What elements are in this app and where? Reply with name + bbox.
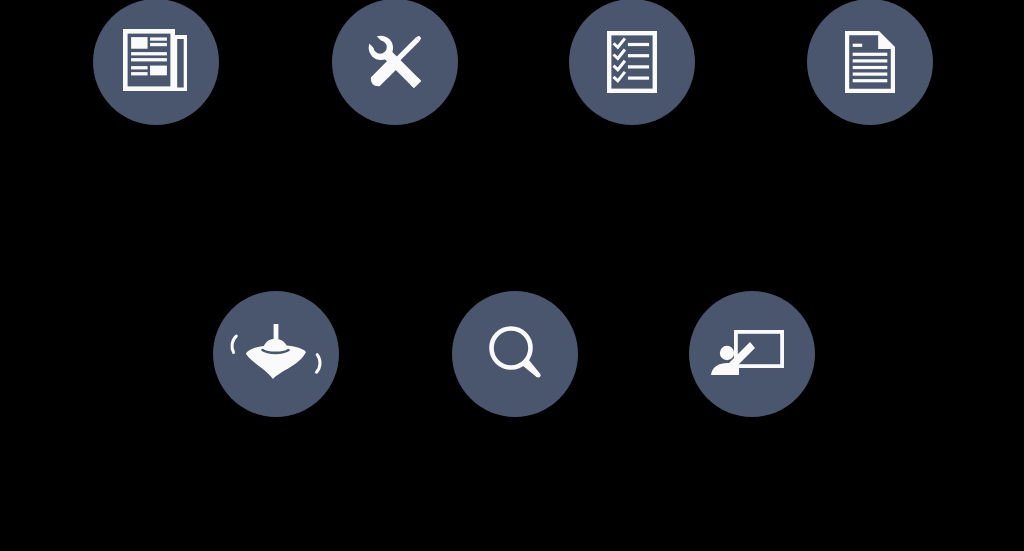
button[interactable]: Spinning top [213,291,339,417]
button[interactable]: News [93,0,219,125]
button[interactable]: Tools [332,0,458,125]
button[interactable]: Search [452,291,578,417]
button[interactable]: Document [807,0,933,125]
button[interactable]: Presentation [689,291,815,417]
button[interactable]: Checklist [569,0,695,125]
